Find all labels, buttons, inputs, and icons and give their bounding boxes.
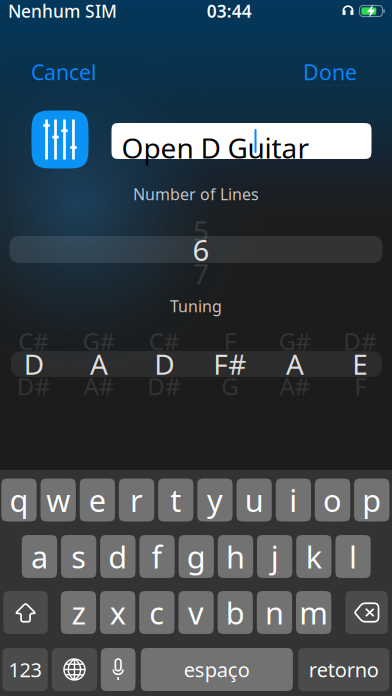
staticText: r: [130, 480, 143, 520]
staticText: z: [71, 592, 85, 633]
staticText: C#: [149, 325, 180, 357]
staticText: A: [286, 345, 304, 383]
button[interactable]: f: [139, 535, 175, 578]
staticText: 5: [193, 212, 209, 249]
staticText: c: [149, 592, 164, 633]
staticText: G#: [278, 325, 311, 357]
staticText: Nenhum SIM: [8, 0, 117, 22]
button[interactable]: Cancel: [25, 51, 103, 93]
button[interactable]: n: [257, 591, 292, 634]
button[interactable]: z: [61, 591, 96, 634]
button[interactable]: Shift: [3, 591, 48, 634]
staticText: C#: [18, 325, 49, 357]
button[interactable]: t: [158, 478, 193, 521]
staticText: D#: [17, 370, 51, 402]
staticText: a: [31, 536, 48, 577]
staticText: l: [349, 536, 357, 577]
button[interactable]: e: [80, 478, 115, 521]
button[interactable]: j: [257, 535, 292, 578]
staticText: x: [110, 592, 126, 633]
button[interactable]: Dictation: [101, 648, 135, 691]
button[interactable]: m: [296, 591, 331, 634]
button[interactable]: h: [218, 535, 253, 578]
staticText: m: [299, 592, 328, 633]
button[interactable]: espaço: [141, 648, 293, 691]
staticText: D#: [343, 325, 377, 357]
button[interactable]: w: [40, 478, 76, 521]
staticText: D: [154, 345, 174, 383]
staticText: e: [89, 480, 106, 520]
staticText: A#: [83, 370, 114, 402]
staticText: E: [352, 345, 368, 383]
staticText: D#: [147, 370, 181, 402]
button[interactable]: o: [315, 478, 350, 521]
staticText: F#: [213, 345, 246, 383]
button[interactable]: x: [100, 591, 135, 634]
button[interactable]: a: [22, 535, 57, 578]
button[interactable]: b: [218, 591, 253, 634]
staticText: f: [152, 536, 163, 577]
button[interactable]: g: [179, 535, 214, 578]
button[interactable]: y: [197, 478, 233, 521]
button[interactable]: s: [61, 535, 96, 578]
button[interactable]: k: [296, 535, 331, 578]
staticText: Open D Guitar: [121, 129, 309, 166]
button[interactable]: Next keyboard: [52, 648, 97, 691]
staticText: Done: [303, 58, 357, 86]
button[interactable]: l: [335, 535, 371, 578]
staticText: p: [362, 480, 381, 520]
staticText: d: [108, 536, 127, 577]
staticText: D: [24, 345, 44, 383]
staticText: w: [46, 480, 70, 520]
staticText: i: [289, 480, 297, 520]
staticText: u: [245, 480, 264, 520]
button[interactable]: p: [354, 478, 389, 521]
button[interactable]: d: [100, 535, 135, 578]
staticText: b: [226, 592, 245, 633]
staticText: Number of Lines: [133, 183, 259, 205]
staticText: n: [265, 592, 284, 633]
staticText: k: [306, 536, 322, 577]
staticText: Tuning: [170, 295, 222, 317]
staticText: o: [323, 480, 342, 520]
staticText: retorno: [309, 656, 379, 683]
button[interactable]: u: [236, 478, 272, 521]
staticText: 6: [192, 230, 209, 269]
button[interactable]: Delete: [345, 591, 388, 634]
button[interactable]: retorno: [298, 648, 389, 691]
staticText: G: [221, 370, 238, 402]
staticText: A#: [279, 370, 310, 402]
staticText: Cancel: [31, 58, 97, 86]
staticText: espaço: [184, 656, 250, 683]
button[interactable]: i: [276, 478, 311, 521]
staticText: h: [226, 536, 245, 577]
staticText: s: [71, 536, 86, 577]
button[interactable]: 123: [2, 648, 48, 691]
button[interactable]: r: [119, 478, 154, 521]
staticText: F: [354, 370, 366, 402]
staticText: j: [271, 536, 279, 577]
staticText: v: [188, 592, 204, 633]
button[interactable]: q: [1, 478, 37, 521]
staticText: A: [90, 345, 108, 383]
staticText: 7: [193, 255, 209, 292]
staticText: t: [170, 480, 181, 520]
staticText: 123: [9, 656, 42, 683]
button[interactable]: v: [178, 591, 214, 634]
button[interactable]: Done: [297, 51, 363, 93]
staticText: F: [224, 325, 236, 357]
button[interactable]: c: [139, 591, 174, 634]
staticText: g: [187, 536, 206, 577]
staticText: 03:44: [207, 0, 252, 22]
staticText: G#: [82, 325, 115, 357]
staticText: q: [9, 480, 28, 520]
staticText: y: [207, 480, 223, 520]
